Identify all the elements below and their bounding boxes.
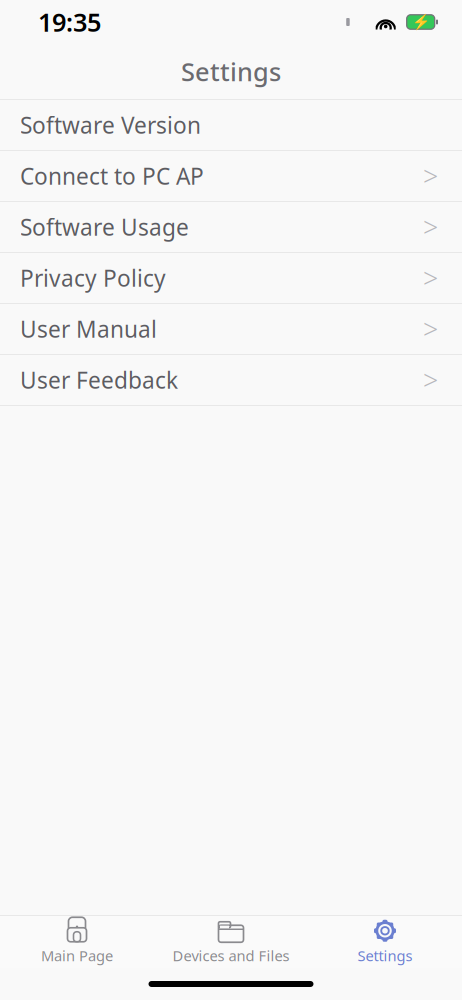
button[interactable]: User Manual xyxy=(0,304,462,355)
staticText: Settings xyxy=(357,946,412,965)
button[interactable]: Devices and Files xyxy=(154,913,308,971)
staticText: 19:35 xyxy=(38,5,101,39)
staticText: User Feedback xyxy=(20,365,178,395)
staticText: Settings xyxy=(181,55,281,88)
button[interactable]: Main Page xyxy=(0,913,154,971)
button[interactable]: Software Version xyxy=(0,100,462,151)
staticText: ⚡ xyxy=(412,14,430,30)
button[interactable]: Privacy Policy xyxy=(0,253,462,304)
button[interactable]: Connect to PC AP xyxy=(0,151,462,202)
staticText: Connect to PC AP xyxy=(20,161,204,191)
staticText: > xyxy=(423,311,438,347)
staticText: Privacy Policy xyxy=(20,263,166,293)
staticText: Devices and Files xyxy=(172,946,289,965)
button[interactable]: Software Usage xyxy=(0,202,462,253)
staticText: > xyxy=(423,209,438,245)
staticText: Software Usage xyxy=(20,212,189,242)
button[interactable]: Settings xyxy=(308,913,462,971)
staticText: > xyxy=(423,158,438,194)
staticText: Software Version xyxy=(20,110,201,140)
button[interactable]: User Feedback xyxy=(0,355,462,406)
staticText: Main Page xyxy=(41,946,113,965)
staticText: > xyxy=(423,362,438,398)
staticText: User Manual xyxy=(20,314,157,344)
staticText: > xyxy=(423,260,438,296)
